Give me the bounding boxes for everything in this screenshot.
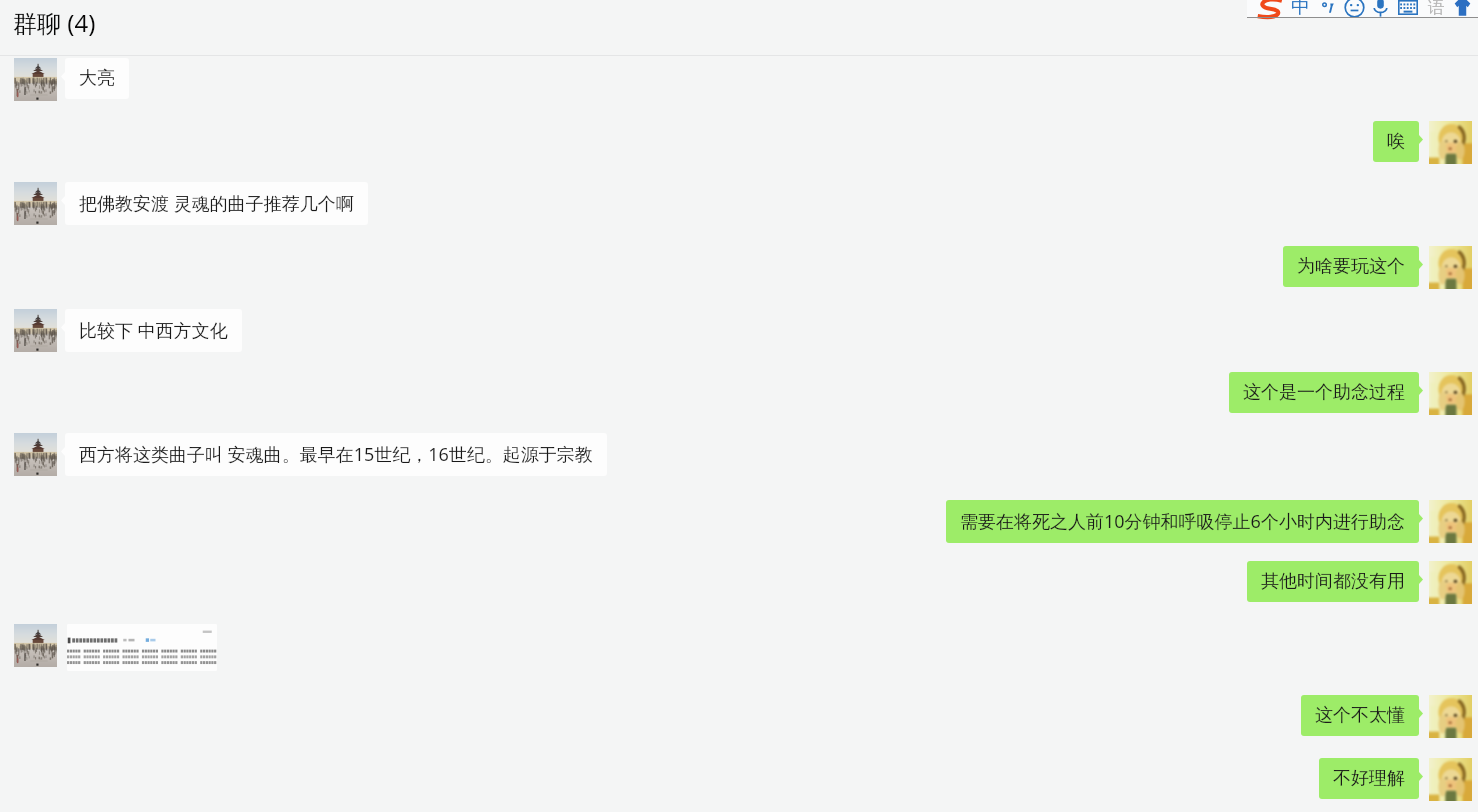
button[interactable]: 唉 [1373,121,1419,162]
staticText: 把佛教安渡 灵魂的曲子推荐几个啊 [79,191,354,216]
button[interactable]: My avatar [1429,561,1472,604]
button[interactable] [67,624,217,671]
button[interactable]: 为啥要玩这个 [1283,246,1419,287]
staticText: 比较下 中西方文化 [79,318,228,343]
staticText: 语 [1428,0,1445,18]
button[interactable]: 群聊 (4) [0,0,1478,55]
staticText: 需要在将死之人前10分钟和呼吸停止6个小时内进行助念 [960,509,1405,534]
staticText: 唉 [1387,130,1405,153]
button[interactable]: Contact avatar [14,182,57,225]
staticText: 中 [1291,0,1310,19]
button[interactable]: 把佛教安渡 灵魂的曲子推荐几个啊 [65,182,368,225]
button[interactable]: 比较下 中西方文化 [65,309,242,352]
button[interactable]: My avatar [1429,372,1472,415]
staticText: 西方将这类曲子叫 安魂曲。最早在15世纪，16世纪。起源于宗教 [79,442,593,467]
button[interactable]: 这个不太懂 [1301,695,1419,736]
button[interactable]: 大亮 [65,58,129,99]
staticText: 这个不太懂 [1315,704,1405,727]
button[interactable]: My avatar [1429,695,1472,738]
button[interactable]: Contact avatar [14,58,57,101]
button[interactable]: Input method [1254,0,1285,19]
button[interactable]: Contact avatar [14,624,57,667]
staticText: 其他时间都没有用 [1261,570,1405,593]
button[interactable]: My avatar [1429,121,1472,164]
button[interactable]: Contact avatar [14,433,57,476]
button[interactable]: My avatar [1429,758,1472,801]
staticText: 群聊 (4) [13,6,96,39]
button[interactable]: 不好理解 [1319,758,1419,799]
staticText: 为啥要玩这个 [1297,255,1405,278]
button[interactable]: Punctuation [1321,0,1337,16]
staticText: 大亮 [79,67,115,90]
button[interactable]: 需要在将死之人前10分钟和呼吸停止6个小时内进行助念 [946,500,1419,543]
button[interactable]: Keyboard [1398,0,1418,15]
button[interactable]: 西方将这类曲子叫 安魂曲。最早在15世纪，16世纪。起源于宗教 [65,433,607,476]
button[interactable]: My avatar [1429,500,1472,543]
button[interactable]: Theme [1454,0,1471,16]
button[interactable]: 语 [1428,0,1445,18]
staticText: 这个是一个助念过程 [1243,381,1405,404]
button[interactable]: 中 [1291,0,1310,19]
button[interactable]: 其他时间都没有用 [1247,561,1419,602]
button[interactable]: Contact avatar [14,309,57,352]
button[interactable]: 这个是一个助念过程 [1229,372,1419,413]
button[interactable]: My avatar [1429,246,1472,289]
button[interactable]: Voice input [1373,0,1388,17]
staticText: 不好理解 [1333,767,1405,790]
button[interactable]: Emoji [1344,0,1365,18]
